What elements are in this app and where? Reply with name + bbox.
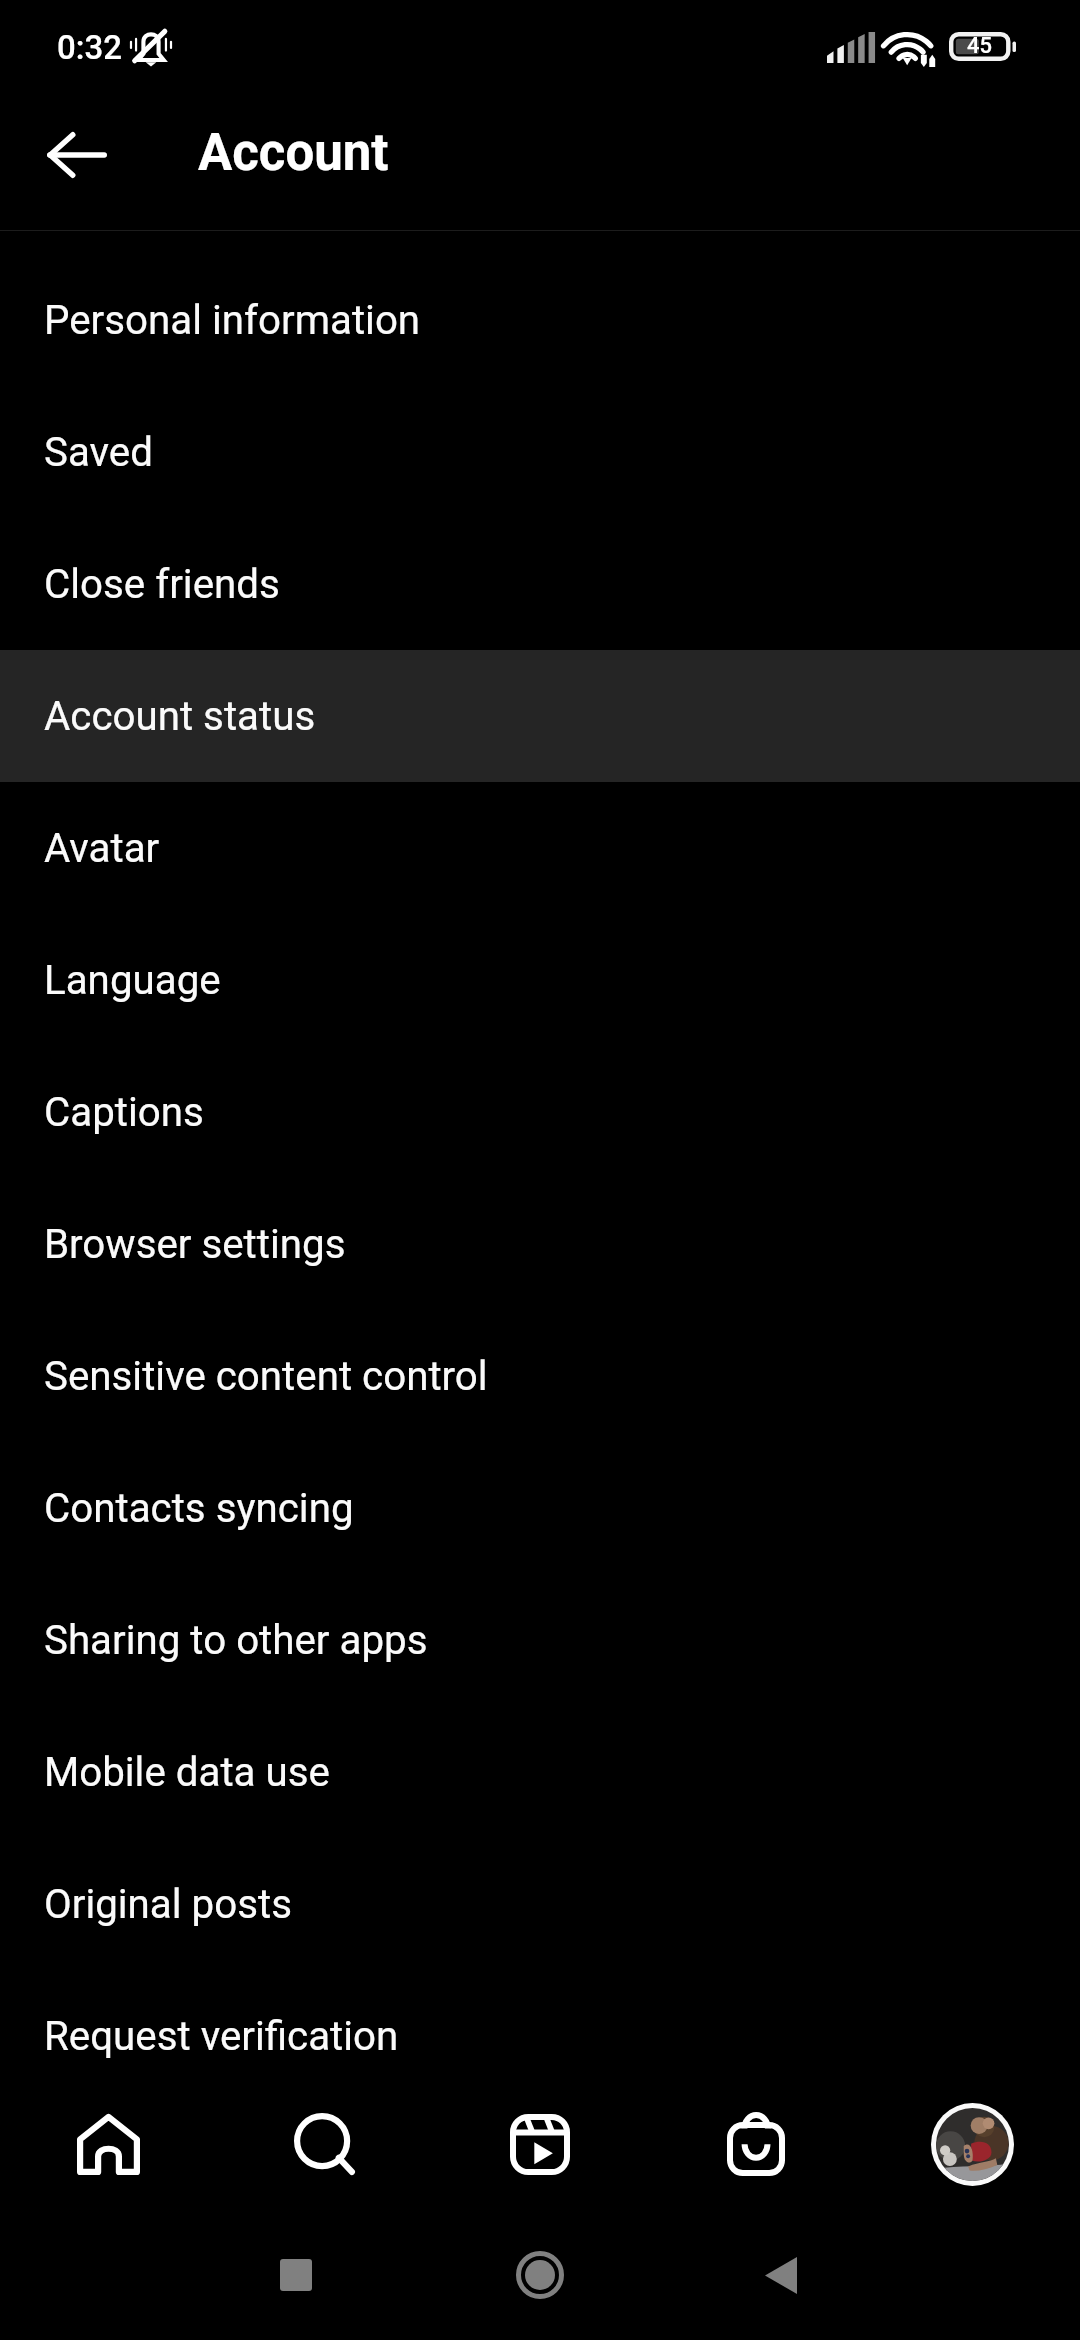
button[interactable]: Saved (0, 386, 1080, 518)
staticText: Language (44, 957, 221, 1004)
staticText: Contacts syncing (44, 1485, 354, 1532)
staticText: Close friends (44, 561, 280, 608)
button[interactable]: Original posts (0, 1838, 1080, 1970)
button[interactable]: Recent apps (246, 2241, 346, 2309)
staticText: Account privacy (44, 2277, 331, 2324)
button[interactable]: Captions (0, 1046, 1080, 1178)
button[interactable]: Account status (0, 650, 1080, 782)
staticText: Request verification (44, 2013, 399, 2060)
button[interactable]: Contacts syncing (0, 1442, 1080, 1574)
staticText: Account status (44, 693, 316, 740)
button[interactable]: Sharing to other apps (0, 1574, 1080, 1706)
button[interactable]: Request verification (0, 1970, 1080, 2102)
button[interactable]: Profile (864, 2094, 1080, 2194)
button[interactable]: Close friends (0, 518, 1080, 650)
staticText: Account (198, 123, 389, 183)
staticText: Captions (44, 1089, 204, 1136)
staticText: Sensitive content control (44, 1353, 488, 1400)
button[interactable]: Sensitive content control (0, 1310, 1080, 1442)
staticText: 0:32 (57, 28, 122, 67)
button[interactable]: Account privacy (0, 2234, 1080, 2340)
button[interactable]: Language (0, 914, 1080, 1046)
staticText: 45 (967, 33, 993, 59)
button[interactable]: Mobile data use (0, 1706, 1080, 1838)
button[interactable]: Reels (432, 2094, 648, 2194)
button[interactable]: Supervision (0, 2102, 1080, 2234)
staticText: Sharing to other apps (44, 1617, 428, 1664)
button[interactable]: Personal information (0, 254, 1080, 386)
staticText: Mobile data use (44, 1749, 330, 1796)
staticText: Original posts (44, 1881, 292, 1928)
button[interactable]: Shop (648, 2094, 864, 2194)
staticText: Saved (44, 429, 153, 476)
button[interactable]: Avatar (0, 782, 1080, 914)
staticText: Avatar (44, 825, 160, 872)
staticText: Browser settings (44, 1221, 346, 1268)
button[interactable]: Home (0, 2094, 216, 2194)
button[interactable]: Search (216, 2094, 432, 2194)
button[interactable]: Back (24, 102, 130, 208)
button[interactable]: Back (731, 2241, 831, 2309)
staticText: Personal information (44, 297, 421, 344)
button[interactable]: Home (490, 2241, 590, 2309)
staticText: Supervision (44, 2145, 254, 2192)
button[interactable]: Browser settings (0, 1178, 1080, 1310)
